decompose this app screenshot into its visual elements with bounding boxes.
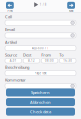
staticText: A-01	[10, 59, 17, 62]
staticText: Beschreibung	[5, 64, 29, 70]
button[interactable]: Next record	[63, 0, 81, 13]
staticText: 08:00	[45, 59, 54, 62]
staticText: Next	[69, 9, 74, 13]
staticText: B-12	[28, 59, 35, 62]
button[interactable]: Abbrechen	[6, 98, 75, 106]
staticText: Artikel	[5, 39, 17, 45]
staticText: 16:30	[63, 59, 72, 62]
staticText: Page text	[34, 71, 46, 75]
staticText: 1 / 8	[40, 3, 47, 6]
staticText: Kommentar	[5, 77, 26, 83]
staticText: Speichern	[31, 90, 50, 95]
staticText: Abbrechen	[30, 99, 51, 105]
staticText: ALU-600 / 1	[32, 46, 49, 50]
staticText: From	[41, 52, 51, 57]
staticText: Email	[5, 27, 15, 32]
button[interactable]: Speichern	[6, 88, 75, 96]
staticText: Check data	[30, 109, 51, 114]
staticText: Dest	[23, 52, 31, 57]
staticText: To	[59, 52, 63, 57]
staticText: Source	[5, 52, 17, 57]
staticText: Call	[5, 14, 12, 19]
button[interactable]: Check data	[6, 108, 75, 116]
staticText: Prev	[7, 9, 12, 13]
button[interactable]: Previous record	[0, 0, 18, 13]
